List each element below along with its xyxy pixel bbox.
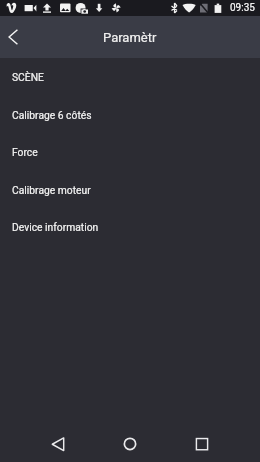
button[interactable]: SCÈNE (0, 58, 260, 96)
button[interactable]: Calibrage 6 côtés (0, 96, 260, 134)
button[interactable]: Home (110, 426, 150, 462)
staticText: Device information (12, 221, 99, 233)
button[interactable]: Device information (0, 208, 260, 246)
staticText: Calibrage 6 côtés (12, 109, 92, 121)
staticText: Force (12, 146, 38, 158)
staticText: Paramètr (103, 30, 157, 45)
button[interactable]: Force (0, 133, 260, 171)
button[interactable]: Calibrage moteur (0, 171, 260, 209)
staticText: 09:35 (230, 2, 255, 14)
button[interactable]: Recents (182, 426, 222, 462)
button[interactable]: Back (0, 16, 26, 58)
staticText: Calibrage moteur (12, 184, 91, 196)
staticText: SCÈNE (12, 71, 44, 83)
button[interactable]: Back (38, 426, 78, 462)
